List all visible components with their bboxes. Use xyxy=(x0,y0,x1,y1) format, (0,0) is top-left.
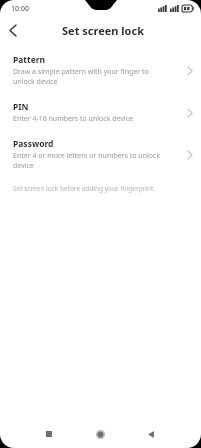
button[interactable]: Home xyxy=(89,423,111,445)
button[interactable]: Recents xyxy=(38,423,60,445)
staticText: Enter 4-16 numbers to unlock device xyxy=(13,114,133,124)
staticText: Pattern xyxy=(13,54,46,66)
button[interactable]: Back xyxy=(140,423,162,445)
staticText: Password xyxy=(13,138,54,150)
button[interactable]: Password xyxy=(0,131,201,178)
staticText: Enter 4 or more letters or numbers to un… xyxy=(13,151,170,171)
staticText: PIN xyxy=(13,101,29,113)
button[interactable]: PIN xyxy=(0,94,201,131)
staticText: Set screen lock before adding your finge… xyxy=(13,184,156,193)
button[interactable]: Back xyxy=(0,17,26,43)
staticText: Set screen lock xyxy=(62,23,144,38)
staticText: 10:00 xyxy=(11,4,29,14)
button[interactable]: Pattern xyxy=(0,47,201,94)
staticText: Draw a simple pattern with your finger t… xyxy=(13,67,170,87)
